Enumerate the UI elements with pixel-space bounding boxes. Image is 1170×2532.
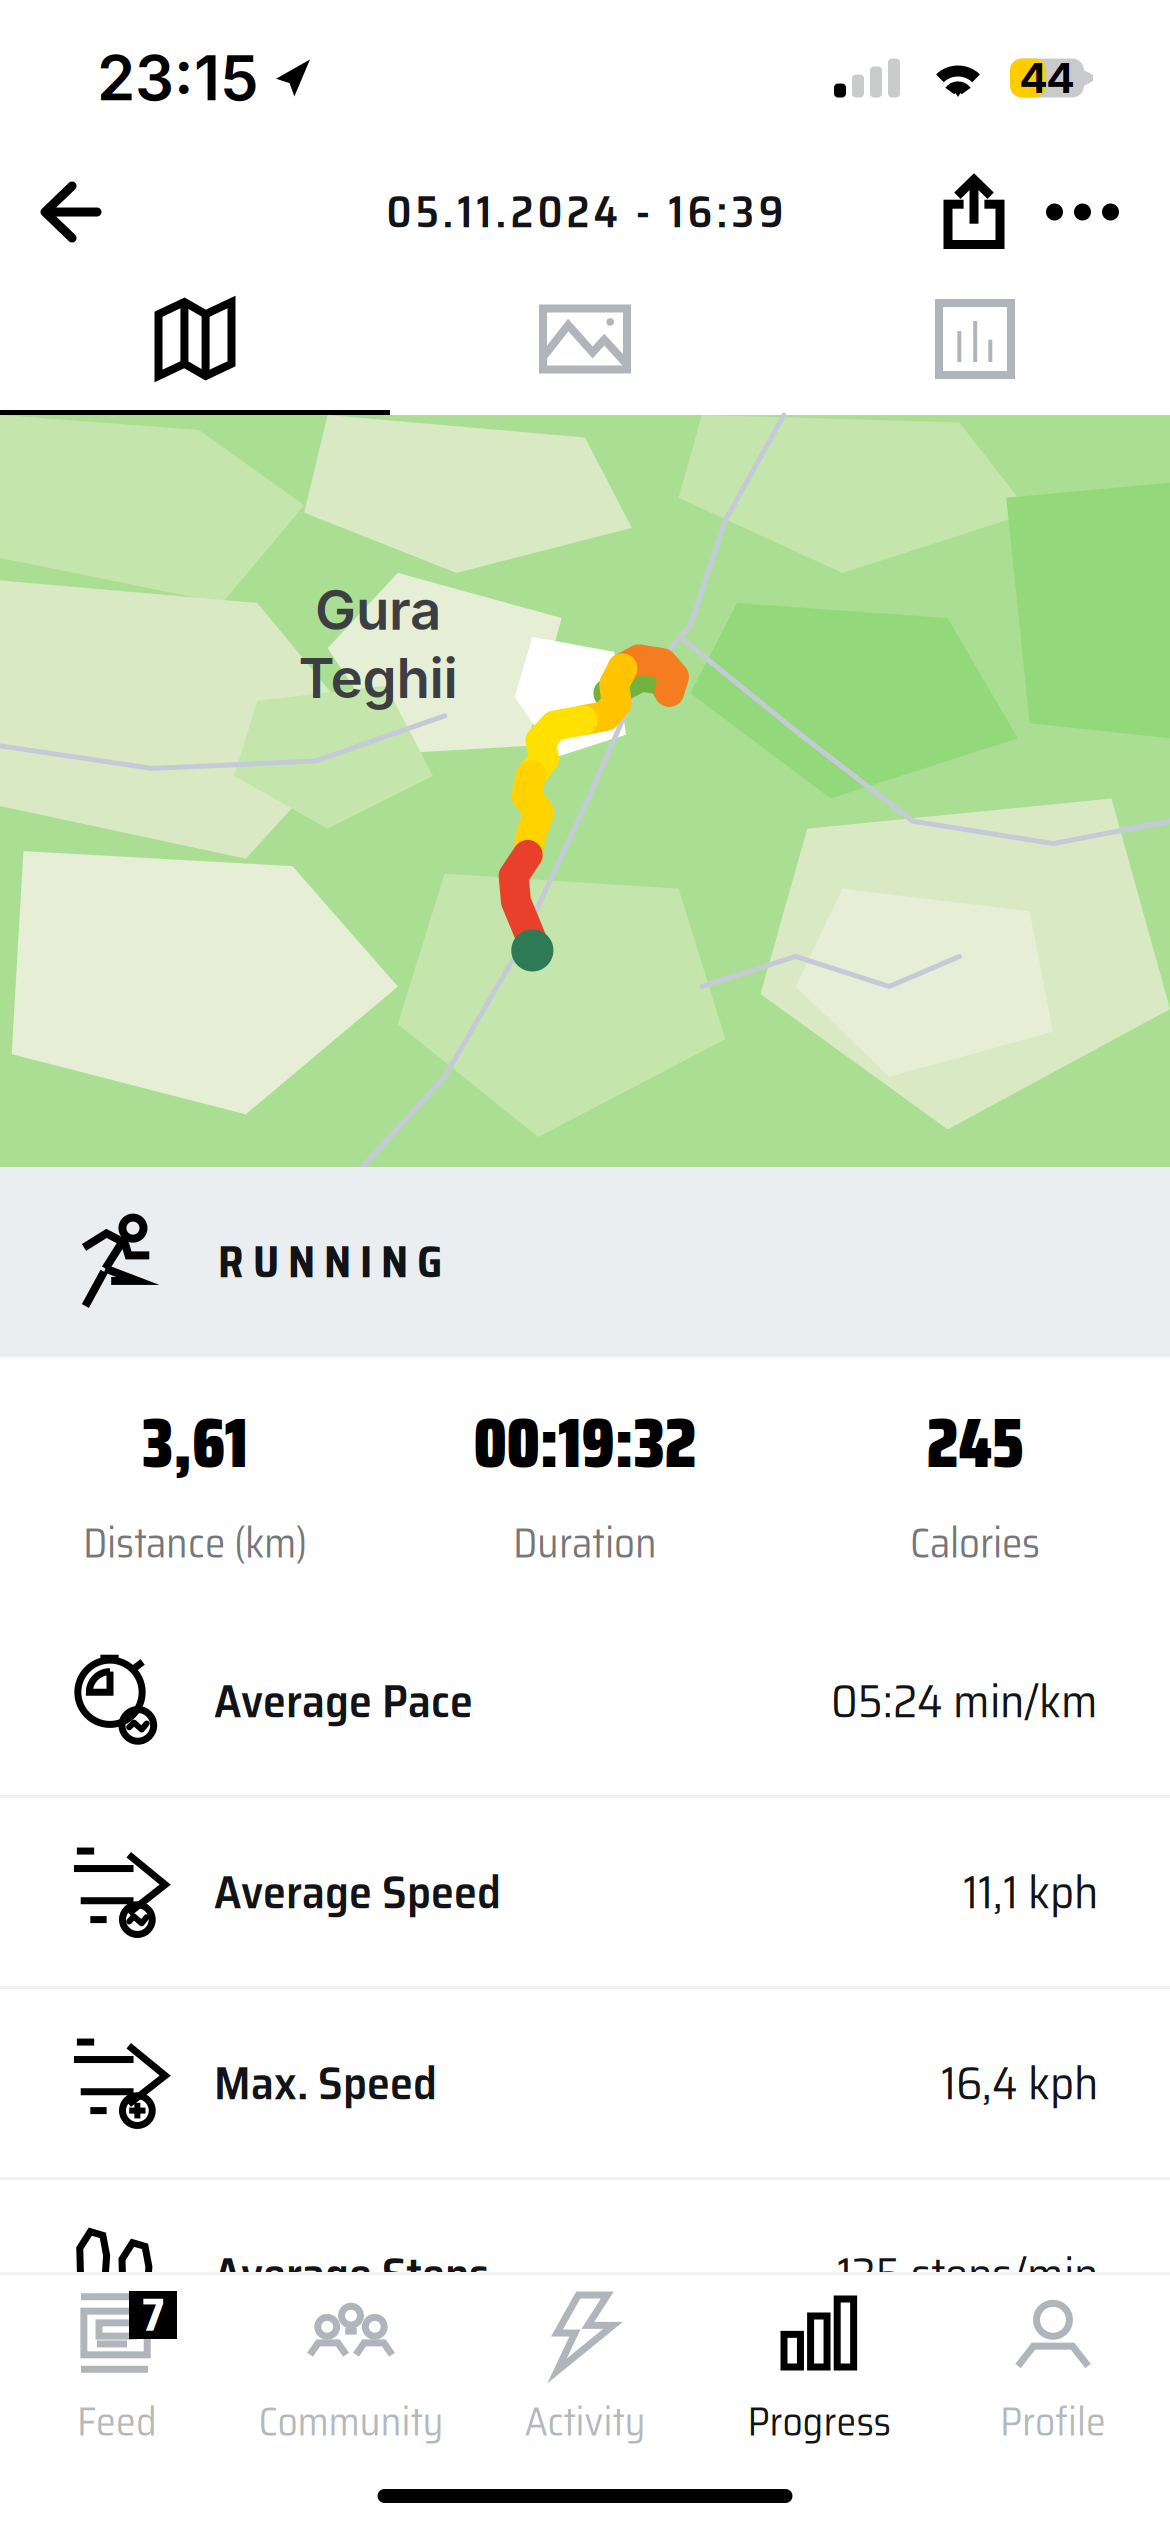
button[interactable]: Average Steps: [0, 2180, 1170, 2368]
button[interactable]: Activity: [468, 2281, 702, 2454]
staticText: 44: [1020, 53, 1074, 103]
button[interactable]: Photos: [390, 268, 780, 410]
staticText: 3,61: [142, 1388, 248, 1497]
staticText: Activity: [524, 2390, 645, 2453]
staticText: Teghii: [298, 645, 457, 711]
staticText: 245: [926, 1388, 1023, 1497]
button[interactable]: Progress: [702, 2281, 936, 2454]
staticText: Average Speed: [214, 1855, 501, 1929]
button[interactable]: Max. Speed: [0, 1989, 1170, 2177]
staticText: Calories: [910, 1510, 1040, 1576]
button[interactable]: More options: [1026, 163, 1139, 260]
button[interactable]: Charts: [780, 268, 1170, 410]
staticText: RUNNING: [218, 1227, 442, 1297]
staticText: 05:24 min/km: [831, 1664, 1098, 1738]
staticText: Profile: [1000, 2390, 1106, 2453]
staticText: 16,4 kph: [941, 2046, 1098, 2120]
staticText: 7: [142, 2279, 164, 2351]
button[interactable]: Profile: [936, 2281, 1170, 2454]
button[interactable]: 7: [0, 2281, 234, 2454]
staticText: Duration: [513, 1510, 657, 1576]
button[interactable]: Map: [0, 268, 390, 410]
staticText: Max. Speed: [214, 2046, 437, 2120]
button[interactable]: Average Speed: [0, 1798, 1170, 1986]
staticText: Distance (km): [83, 1510, 307, 1576]
staticText: Gura: [315, 577, 441, 643]
button[interactable]: Back: [23, 162, 119, 262]
button[interactable]: Average Pace: [0, 1607, 1170, 1795]
staticText: 23:15: [97, 41, 259, 115]
staticText: 05.11.2024 - 16:39: [386, 177, 783, 247]
staticText: Progress: [747, 2390, 890, 2453]
staticText: Feed: [77, 2390, 157, 2453]
button[interactable]: Share: [922, 163, 1026, 260]
staticText: Average Pace: [214, 1664, 473, 1738]
staticText: 00:19:32: [473, 1388, 696, 1497]
staticText: 135 steps/min: [837, 2237, 1098, 2311]
staticText: Community: [258, 2390, 443, 2453]
button[interactable]: Community: [234, 2281, 468, 2454]
staticText: 11,1 kph: [963, 1855, 1098, 1929]
staticText: Average Steps: [214, 2237, 489, 2311]
